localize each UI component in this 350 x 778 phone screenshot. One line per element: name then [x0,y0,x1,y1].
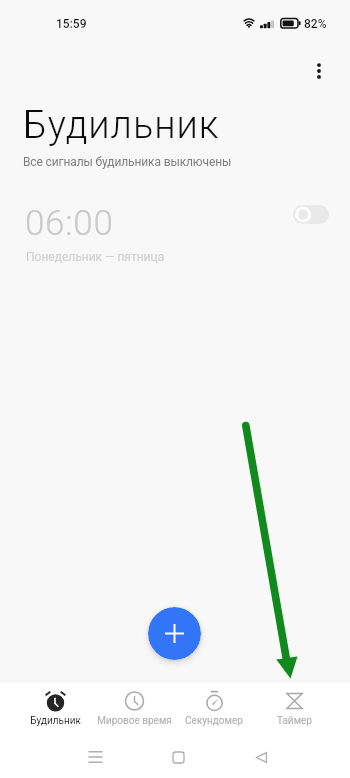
button[interactable]: More options [299,51,339,91]
button[interactable]: Мировое время [95,685,174,733]
staticText: Будильник [23,103,220,148]
staticText: Мировое время [97,715,172,727]
button[interactable]: Home [158,737,198,777]
staticText: Все сигналы будильника выключены [23,155,232,169]
staticText: Будильник [30,715,81,727]
button[interactable]: Секундомер [174,685,254,733]
staticText: 06:00 [25,203,114,244]
staticText: Понедельник — пятница [26,250,165,264]
button[interactable]: Таймер [254,685,334,733]
button[interactable]: Будильник [16,685,95,733]
button[interactable]: Recent apps [75,737,115,777]
staticText: Секундомер [185,715,243,727]
staticText: Таймер [277,715,312,727]
button[interactable]: Toggle alarm [293,205,329,224]
button[interactable]: Add alarm [148,607,201,660]
button[interactable]: Back [241,737,281,777]
staticText: 82% [304,17,327,31]
staticText: 15:59 [56,17,87,31]
button[interactable]: 06:00 [0,192,350,270]
